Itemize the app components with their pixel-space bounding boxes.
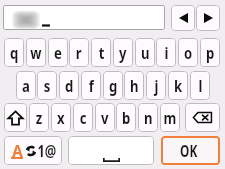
- staticText: OK: [180, 140, 198, 162]
- button[interactable]: i: [156, 38, 176, 67]
- button[interactable]: r: [69, 38, 89, 67]
- staticText: d: [65, 75, 74, 97]
- button[interactable]: Space: [68, 136, 154, 165]
- staticText: z: [36, 107, 42, 129]
- staticText: r: [76, 42, 82, 64]
- button[interactable]: Backspace: [185, 103, 220, 132]
- staticText: t: [99, 42, 104, 64]
- staticText: 1@: [37, 140, 57, 162]
- button[interactable]: p: [200, 38, 220, 67]
- staticText: v: [101, 107, 109, 129]
- button[interactable]: q: [4, 38, 24, 67]
- staticText: m: [163, 107, 176, 129]
- staticText: b: [122, 107, 131, 129]
- button[interactable]: h: [124, 71, 144, 100]
- staticText: s: [44, 75, 51, 97]
- staticText: n: [144, 107, 153, 129]
- button[interactable]: g: [103, 71, 123, 100]
- staticText: o: [184, 42, 193, 64]
- button[interactable]: Text input field: [3, 5, 165, 30]
- button[interactable]: o: [178, 38, 198, 67]
- staticText: u: [141, 42, 150, 64]
- staticText: A: [12, 140, 24, 162]
- staticText: j: [154, 75, 158, 97]
- staticText: e: [54, 42, 62, 64]
- button[interactable]: l: [190, 71, 210, 100]
- button[interactable]: v: [95, 103, 115, 132]
- button[interactable]: t: [91, 38, 111, 67]
- button[interactable]: x: [51, 103, 71, 132]
- button[interactable]: Move cursor left: [171, 5, 195, 31]
- staticText: y: [119, 42, 127, 64]
- button[interactable]: c: [73, 103, 93, 132]
- button[interactable]: Shift: [4, 103, 27, 132]
- staticText: c: [80, 107, 87, 129]
- staticText: w: [30, 42, 42, 64]
- staticText: l: [198, 75, 202, 97]
- staticText: h: [130, 75, 139, 97]
- button[interactable]: y: [113, 38, 133, 67]
- button[interactable]: w: [26, 38, 46, 67]
- button[interactable]: OK: [161, 136, 220, 165]
- button[interactable]: b: [116, 103, 136, 132]
- staticText: q: [10, 42, 19, 64]
- button[interactable]: m: [160, 103, 180, 132]
- button[interactable]: e: [48, 38, 68, 67]
- staticText: f: [89, 75, 94, 97]
- button[interactable]: Switch input mode: [4, 136, 62, 165]
- button[interactable]: f: [81, 71, 101, 100]
- staticText: k: [174, 75, 182, 97]
- staticText: p: [206, 42, 215, 64]
- button[interactable]: d: [59, 71, 79, 100]
- button[interactable]: s: [37, 71, 57, 100]
- button[interactable]: a: [16, 71, 36, 100]
- button[interactable]: k: [168, 71, 188, 100]
- button[interactable]: n: [138, 103, 158, 132]
- button[interactable]: Move cursor right: [196, 5, 220, 31]
- button[interactable]: j: [146, 71, 166, 100]
- staticText: i: [164, 42, 168, 64]
- button[interactable]: u: [135, 38, 155, 67]
- button[interactable]: z: [29, 103, 49, 132]
- staticText: x: [57, 107, 65, 129]
- staticText: g: [109, 75, 118, 97]
- staticText: a: [22, 75, 30, 97]
